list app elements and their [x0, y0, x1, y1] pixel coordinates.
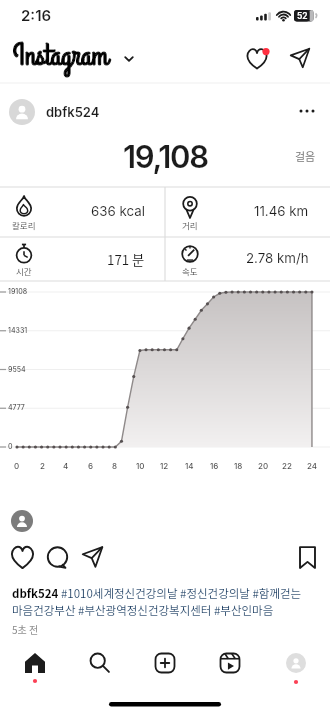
button[interactable] — [290, 47, 312, 69]
button[interactable]: 마음건강부산 #부산광역정신건강복지센터 #부산인마음 — [12, 602, 274, 619]
staticText: 22 — [282, 461, 292, 471]
staticText: 8 — [112, 461, 118, 471]
button[interactable] — [154, 652, 176, 674]
staticText: 9554 — [8, 365, 26, 373]
staticText: 14 — [185, 461, 194, 471]
staticText: 19,108 — [123, 138, 208, 176]
button[interactable] — [89, 652, 111, 674]
staticText: 20 — [258, 461, 269, 471]
staticText: 16 — [210, 461, 219, 471]
staticText: 14331 — [8, 326, 28, 334]
button[interactable] — [46, 546, 69, 569]
staticText: dbfk524 — [46, 104, 100, 120]
staticText: 12 — [160, 461, 169, 471]
staticText: 2:16 — [21, 6, 52, 24]
staticText: 시간 — [16, 265, 32, 277]
staticText: 4777 — [8, 403, 25, 411]
button[interactable] — [11, 546, 34, 569]
staticText: 속도 — [182, 265, 198, 277]
staticText: 18 — [234, 461, 243, 471]
staticText: 11.46 km — [254, 203, 309, 219]
staticText: 19108 — [8, 287, 28, 295]
staticText: 칼로리 — [12, 219, 36, 231]
button[interactable] — [219, 652, 241, 674]
button[interactable] — [24, 652, 46, 674]
staticText: 2 — [40, 461, 45, 471]
staticText: Instagram — [13, 36, 109, 77]
staticText: 걸음 — [295, 148, 316, 164]
staticText: 0 — [14, 461, 20, 471]
staticText: 52 — [297, 11, 308, 21]
staticText: Instagram — [13, 36, 109, 77]
staticText: 6 — [88, 461, 94, 471]
staticText: 24 — [307, 461, 318, 471]
button[interactable] — [122, 53, 136, 65]
button[interactable] — [296, 104, 318, 118]
staticText: 171 분 — [107, 250, 145, 269]
staticText: 거리 — [182, 219, 198, 231]
staticText: 636 kcal — [91, 203, 145, 219]
staticText: 마음건강부산 #부산광역정신건강복지센터 #부산인마음 — [12, 602, 274, 619]
button[interactable]: Instagram — [13, 36, 109, 77]
staticText: 4 — [63, 461, 69, 471]
staticText: dbfk524 #1010세계정신건강의날 #정신건강의날 #함께걷는 — [12, 585, 302, 602]
button[interactable] — [81, 546, 104, 569]
button[interactable] — [285, 652, 307, 674]
staticText: 10 — [136, 461, 145, 471]
staticText: 0 — [8, 442, 13, 450]
button[interactable]: dbfk524 #1010세계정신건강의날 #정신건강의날 #함께걷는 — [12, 585, 302, 602]
button[interactable] — [297, 546, 318, 569]
staticText: 2.78 km/h — [246, 250, 309, 266]
staticText: 5초 전 — [12, 622, 39, 636]
button[interactable] — [246, 47, 270, 70]
